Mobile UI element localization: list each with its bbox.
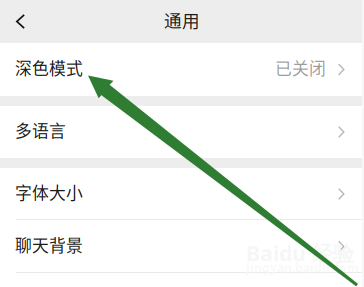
staticText: 已关闭 [275, 55, 326, 80]
button[interactable]: 聊天背景 [0, 220, 364, 273]
button[interactable]: 多语言 [0, 106, 364, 158]
button[interactable]: 深色模式 [0, 43, 364, 96]
staticText: 深色模式 [15, 55, 83, 80]
staticText: Baidu 经验 [246, 239, 354, 267]
button[interactable]: 字体大小 [0, 168, 364, 220]
staticText: jingyan.baidu.com [246, 259, 359, 275]
staticText: 聊天背景 [15, 232, 83, 257]
staticText: 字体大小 [15, 180, 83, 204]
staticText: 多语言 [15, 118, 66, 142]
button[interactable]: Back [0, 0, 39, 43]
staticText: 通用 [164, 7, 200, 32]
